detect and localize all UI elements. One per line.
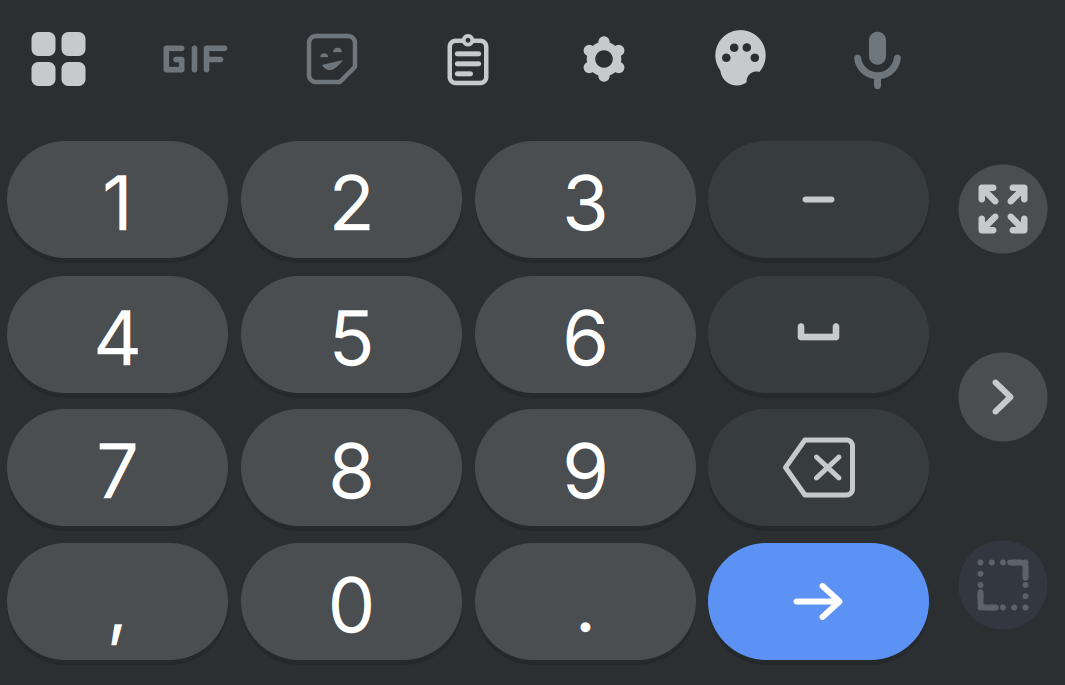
- button[interactable]: 6: [475, 276, 696, 393]
- button[interactable]: .: [475, 543, 696, 660]
- button[interactable]: ,: [7, 543, 228, 660]
- button[interactable]: Stickers: [277, 4, 387, 114]
- button[interactable]: Space: [708, 276, 929, 393]
- staticText: 5: [328, 291, 374, 383]
- button[interactable]: 8: [241, 409, 462, 526]
- staticText: ,: [106, 558, 128, 650]
- staticText: .: [574, 558, 596, 650]
- button[interactable]: 5: [241, 276, 462, 393]
- staticText: 1: [102, 156, 133, 248]
- button[interactable]: Settings: [549, 4, 659, 114]
- button[interactable]: Expand keyboard: [958, 164, 1047, 253]
- button[interactable]: 1: [7, 141, 228, 258]
- button[interactable]: Minus: [708, 141, 929, 258]
- staticText: 9: [562, 424, 609, 516]
- staticText: 2: [328, 156, 374, 248]
- button[interactable]: 2: [241, 141, 462, 258]
- button[interactable]: Clipboard: [413, 4, 523, 114]
- button[interactable]: 0: [241, 543, 462, 660]
- button[interactable]: 9: [475, 409, 696, 526]
- button[interactable]: 4: [7, 276, 228, 393]
- staticText: 6: [562, 291, 609, 383]
- button[interactable]: Enter: [708, 543, 929, 660]
- button[interactable]: Voice input: [822, 4, 932, 114]
- button[interactable]: Themes: [685, 4, 795, 114]
- button[interactable]: Next: [958, 352, 1047, 441]
- button[interactable]: 3: [475, 141, 696, 258]
- staticText: 0: [327, 558, 375, 650]
- staticText: 7: [96, 424, 139, 516]
- button[interactable]: 7: [7, 409, 228, 526]
- staticText: 8: [328, 424, 375, 516]
- button[interactable]: Backspace: [708, 409, 929, 526]
- button[interactable]: Select: [958, 540, 1047, 629]
- button[interactable]: GIF: [140, 4, 250, 114]
- staticText: 4: [93, 291, 142, 383]
- button[interactable]: Apps: [3, 4, 113, 114]
- staticText: 3: [562, 156, 609, 248]
